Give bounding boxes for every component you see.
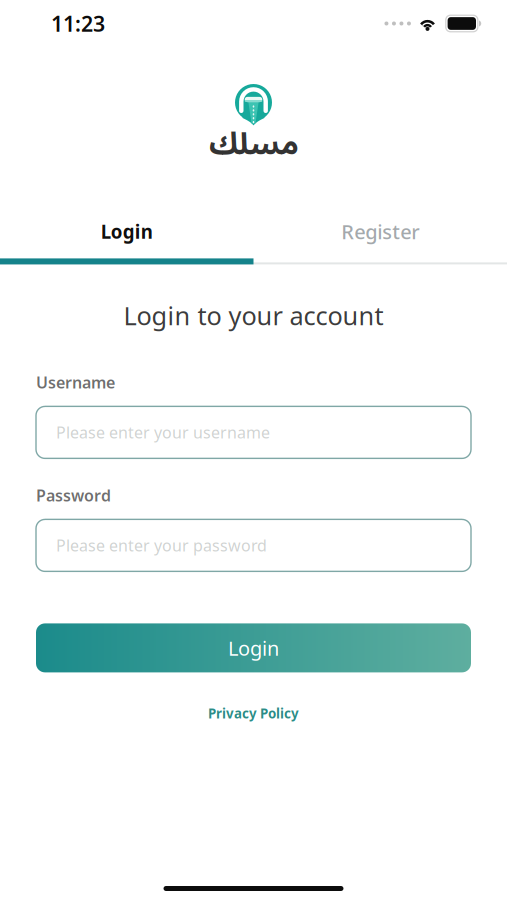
staticText: Privacy Policy <box>208 704 299 722</box>
staticText: 11:23 <box>51 9 105 38</box>
button[interactable]: Please enter your password <box>36 519 471 571</box>
staticText: مسلك <box>208 112 298 177</box>
staticText: Login <box>101 219 153 244</box>
staticText: Login <box>228 635 279 661</box>
staticText: Register <box>341 218 419 245</box>
staticText: Please enter your password <box>56 535 267 556</box>
button[interactable]: Login <box>36 623 471 672</box>
button[interactable]: Login <box>0 220 253 242</box>
button[interactable]: Register <box>253 220 507 242</box>
staticText: Please enter your username <box>56 422 270 443</box>
button[interactable]: Privacy Policy <box>208 704 299 722</box>
staticText: Login to your account <box>123 299 383 332</box>
button[interactable]: Please enter your username <box>36 406 471 458</box>
staticText: Username <box>36 372 115 393</box>
staticText: Password <box>36 485 111 506</box>
